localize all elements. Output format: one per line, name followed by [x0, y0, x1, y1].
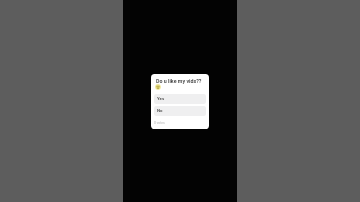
button[interactable]: Yes	[154, 94, 206, 104]
staticText: 0 votes	[154, 121, 165, 125]
staticText: Yes	[157, 96, 165, 101]
button[interactable]: Video	[123, 0, 237, 202]
button[interactable]: No	[154, 106, 206, 116]
staticText: No	[157, 108, 163, 113]
other: Smiling face emoji	[155, 84, 161, 90]
staticText: Do u like my vids??	[156, 78, 202, 84]
